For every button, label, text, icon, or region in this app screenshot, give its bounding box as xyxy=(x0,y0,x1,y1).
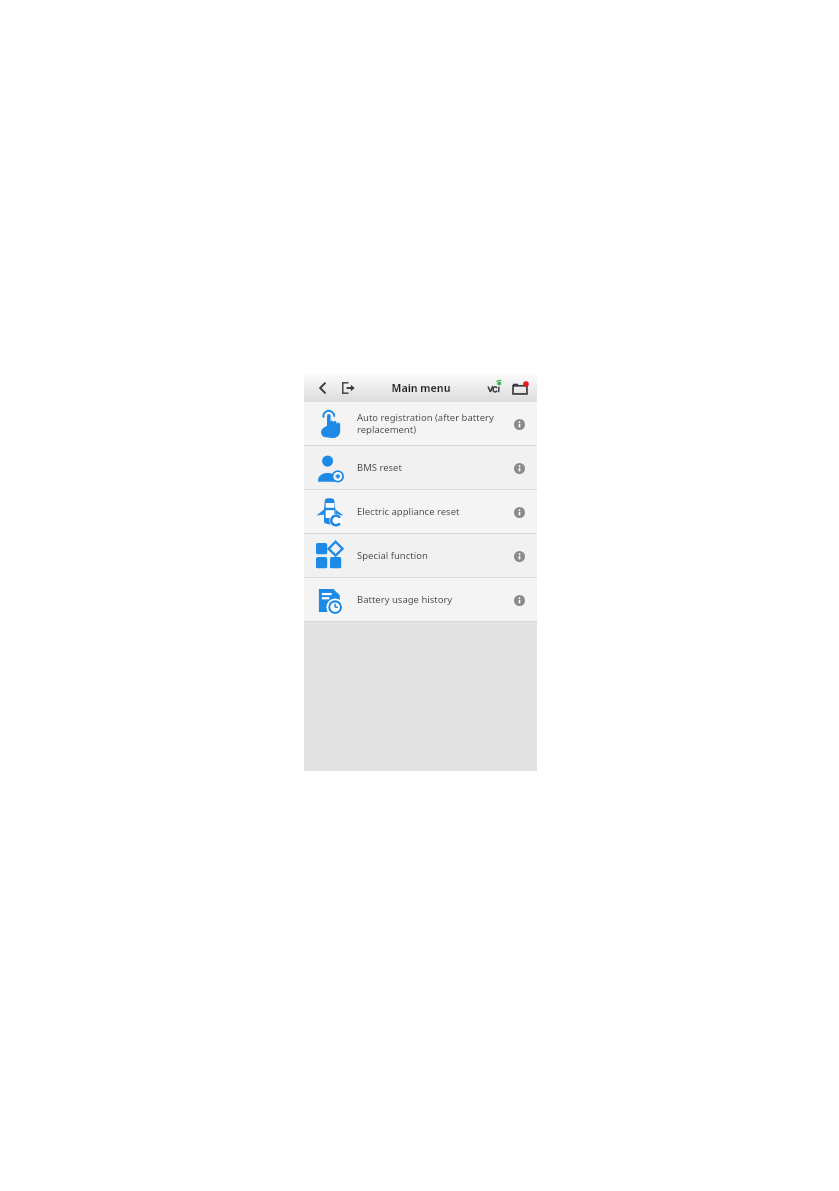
button[interactable]: Auto registration (after battery replace… xyxy=(304,402,537,445)
button[interactable]: Info xyxy=(511,460,527,476)
button[interactable]: Electric appliance reset xyxy=(304,490,537,533)
staticText: Battery usage history xyxy=(357,593,505,606)
staticText: Electric appliance reset xyxy=(357,505,505,518)
button[interactable]: Info xyxy=(511,592,527,608)
button[interactable]: Exit xyxy=(337,377,359,399)
staticText: Auto registration (after battery replace… xyxy=(357,411,505,436)
button[interactable]: Back xyxy=(312,377,334,399)
button[interactable]: Battery usage history xyxy=(304,578,537,621)
button[interactable]: Info xyxy=(511,416,527,432)
staticText: BMS reset xyxy=(357,461,505,474)
staticText: Main menu xyxy=(391,381,451,395)
button[interactable]: BMS reset xyxy=(304,446,537,489)
button[interactable]: Battery status xyxy=(510,378,530,398)
button[interactable]: Info xyxy=(511,504,527,520)
button[interactable]: Special function xyxy=(304,534,537,577)
staticText: Special function xyxy=(357,549,505,562)
button[interactable]: Info xyxy=(511,548,527,564)
button[interactable]: VCI status xyxy=(485,378,505,398)
